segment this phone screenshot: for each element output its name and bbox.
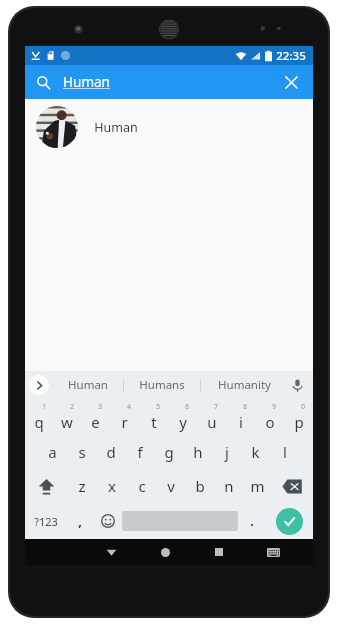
staticText: b xyxy=(195,476,205,496)
staticText: y xyxy=(179,412,187,432)
button[interactable]: Clear search xyxy=(278,69,304,95)
button[interactable]: More suggestions xyxy=(29,375,49,395)
staticText: Human xyxy=(94,119,138,136)
button[interactable]: j xyxy=(212,435,241,469)
staticText: d xyxy=(106,442,116,462)
button[interactable]: ?123 xyxy=(25,503,66,539)
button[interactable]: Emoji xyxy=(94,503,122,539)
button[interactable]: d xyxy=(96,435,125,469)
staticText: f xyxy=(137,442,143,462)
staticText: 2 xyxy=(70,402,74,411)
button[interactable]: 2 xyxy=(53,399,81,435)
button[interactable]: Shift xyxy=(25,469,67,503)
button[interactable]: x xyxy=(97,469,127,503)
staticText: 22:35 xyxy=(276,48,306,64)
button[interactable]: 5 xyxy=(139,399,168,435)
staticText: e xyxy=(91,412,100,432)
button[interactable]: 7 xyxy=(197,399,226,435)
staticText: Human xyxy=(63,73,110,91)
staticText: . xyxy=(250,512,254,530)
button[interactable]: f xyxy=(125,435,154,469)
button[interactable]: 8 xyxy=(226,399,255,435)
button[interactable]: z xyxy=(67,469,97,503)
staticText: 6 xyxy=(185,402,189,411)
button[interactable]: k xyxy=(241,435,270,469)
button[interactable]: a xyxy=(38,435,67,469)
staticText: u xyxy=(207,412,217,432)
button[interactable]: c xyxy=(127,469,156,503)
staticText: 8 xyxy=(243,402,247,411)
staticText: x xyxy=(108,476,116,496)
staticText: Humanity xyxy=(218,377,271,393)
button[interactable]: Voice input xyxy=(287,371,307,399)
button[interactable]: Search xyxy=(25,65,313,99)
staticText: h xyxy=(193,442,203,462)
button[interactable]: s xyxy=(67,435,96,469)
staticText: t xyxy=(151,412,157,432)
button[interactable]: Humans xyxy=(124,371,200,399)
staticText: j xyxy=(225,442,229,462)
staticText: n xyxy=(224,476,234,496)
staticText: 1 xyxy=(42,402,46,411)
button[interactable]: 3 xyxy=(81,399,110,435)
staticText: 4 xyxy=(127,402,131,411)
staticText: 7 xyxy=(214,402,218,411)
button[interactable]: b xyxy=(185,469,214,503)
staticText: p xyxy=(294,412,304,432)
staticText: r xyxy=(121,412,128,432)
staticText: q xyxy=(34,412,44,432)
button[interactable]: Backspace xyxy=(272,469,313,503)
staticText: Human xyxy=(68,377,108,393)
staticText: 0 xyxy=(301,402,305,411)
staticText: Humans xyxy=(139,377,185,393)
staticText: z xyxy=(78,476,86,496)
staticText: 9 xyxy=(272,402,276,411)
staticText: 5 xyxy=(156,402,160,411)
button[interactable]: m xyxy=(243,469,272,503)
staticText: c xyxy=(138,476,146,496)
button[interactable]: 1 xyxy=(25,399,53,435)
staticText: i xyxy=(239,412,243,432)
other: Search xyxy=(36,75,51,90)
staticText: w xyxy=(61,412,73,432)
staticText: a xyxy=(48,442,57,462)
button[interactable]: h xyxy=(183,435,212,469)
button[interactable]: Search xyxy=(276,508,303,535)
staticText: g xyxy=(164,442,174,462)
button[interactable]: 4 xyxy=(110,399,139,435)
button[interactable]: 9 xyxy=(255,399,284,435)
button[interactable]: Switch keyboard xyxy=(246,539,300,565)
button[interactable]: Home xyxy=(138,539,192,565)
staticText: o xyxy=(265,412,275,432)
button[interactable]: Recent apps xyxy=(192,539,246,565)
staticText: m xyxy=(250,476,265,496)
button[interactable]: v xyxy=(156,469,185,503)
button[interactable]: , xyxy=(66,503,94,539)
button[interactable]: Humanity xyxy=(201,371,287,399)
button[interactable]: 0 xyxy=(284,399,313,435)
staticText: s xyxy=(78,442,86,462)
button[interactable]: n xyxy=(214,469,243,503)
staticText: ?123 xyxy=(34,514,58,529)
button[interactable]: Back xyxy=(84,539,138,565)
staticText: k xyxy=(251,442,260,462)
button[interactable]: 6 xyxy=(168,399,197,435)
button[interactable]: . xyxy=(238,503,266,539)
staticText: 3 xyxy=(98,402,102,411)
staticText: v xyxy=(167,476,175,496)
staticText: , xyxy=(78,512,82,530)
button[interactable]: Human xyxy=(25,99,313,155)
button[interactable]: g xyxy=(154,435,183,469)
staticText: l xyxy=(283,442,287,462)
button[interactable]: l xyxy=(270,435,299,469)
button[interactable]: Human xyxy=(53,371,123,399)
